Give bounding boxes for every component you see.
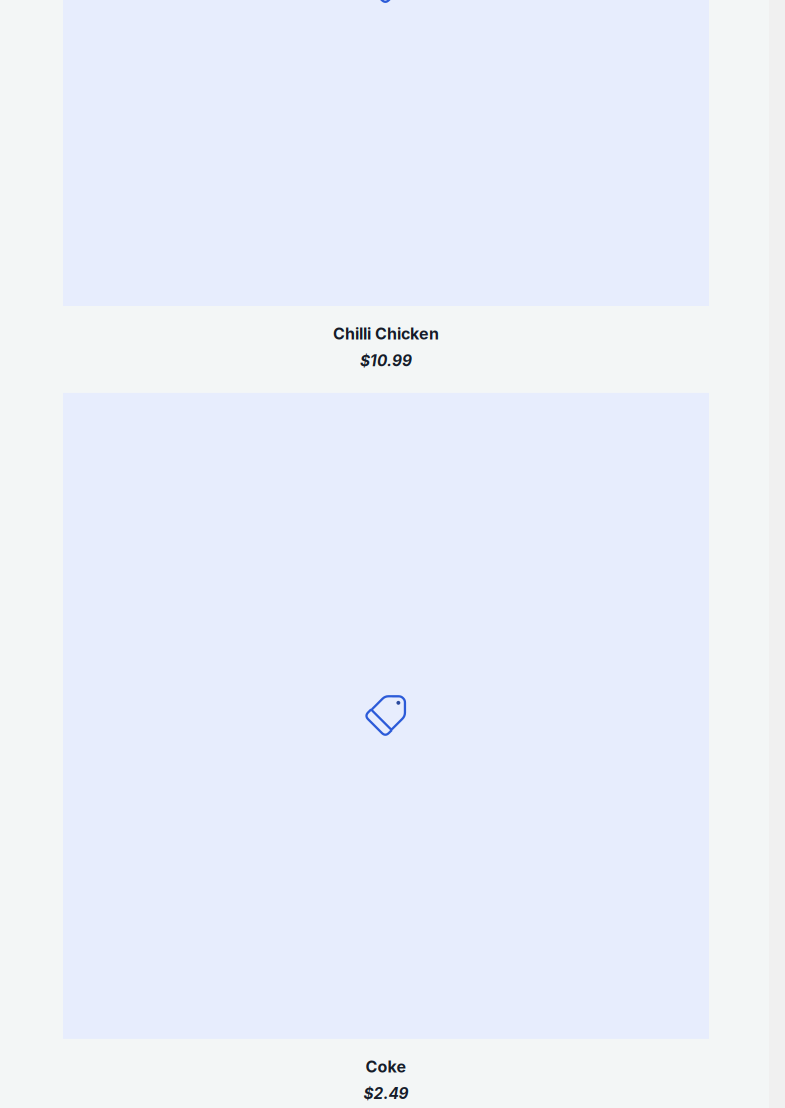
staticText: $10.99 [360, 351, 412, 370]
staticText: $2.49 [363, 1084, 408, 1103]
button[interactable]: Chilli Chicken [63, 0, 709, 393]
button[interactable]: Coke [63, 393, 709, 1108]
staticText: Coke [365, 1057, 406, 1076]
staticText: Chilli Chicken [333, 324, 439, 343]
